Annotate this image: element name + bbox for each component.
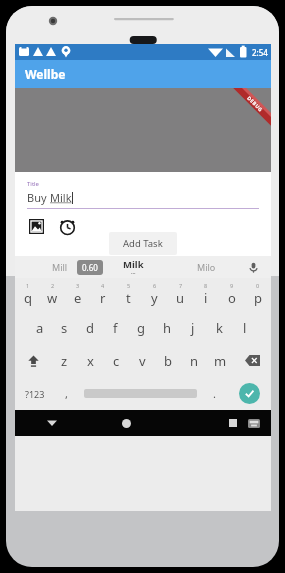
staticText: z [61,352,68,370]
button[interactable]: 9 [219,278,245,311]
staticText: x [87,352,94,370]
button[interactable]: 8 [193,278,219,311]
button[interactable]: a [27,311,52,344]
staticText: 9 [230,282,234,289]
button[interactable]: Back [15,410,89,436]
button[interactable]: 3 [65,278,90,311]
staticText: v [139,352,146,370]
staticText: c [113,352,120,370]
staticText: Add Task [123,237,163,250]
button[interactable]: v [129,344,155,377]
button[interactable]: Voice input [243,256,263,278]
button[interactable]: 0 [245,278,271,311]
staticText: 2:54 [252,47,268,58]
button[interactable]: h [154,311,180,344]
staticText: k [216,319,223,337]
button[interactable]: Wellbe [15,60,271,88]
button[interactable]: Milo [170,256,243,278]
button[interactable]: Home [89,410,163,436]
button[interactable]: Switch keyboard [237,410,271,436]
staticText: Milk [50,190,72,205]
staticText: n [190,352,199,370]
staticText: l [243,319,247,337]
staticText: . [213,386,216,401]
staticText: 3 [76,282,80,289]
staticText: u [176,289,185,307]
staticText: r [100,289,106,307]
button[interactable]: 6 [141,278,167,311]
staticText: 6 [153,282,157,289]
button[interactable]: Add image [27,217,45,235]
button[interactable]: 4 [90,278,115,311]
staticText: Milo [197,261,216,273]
staticText: y [151,289,158,307]
button[interactable]: z [52,344,77,377]
button[interactable]: Add Task [109,232,177,255]
staticText: s [61,319,68,337]
staticText: 5 [127,282,131,289]
button[interactable]: ?123 [15,377,54,410]
staticText: 0.60 [82,262,98,273]
staticText: i [204,289,208,307]
button[interactable]: x [77,344,103,377]
button[interactable]: Done [227,377,271,410]
staticText: q [24,289,32,307]
button[interactable]: , [54,377,79,410]
button[interactable]: c [103,344,129,377]
staticText: b [164,352,172,370]
button[interactable]: 5 [115,278,141,311]
button[interactable]: k [206,311,232,344]
button[interactable]: Backspace [233,344,271,377]
button[interactable]: l [232,311,258,344]
button[interactable]: 2 [40,278,65,311]
staticText: h [163,319,172,337]
button[interactable]: d [77,311,102,344]
staticText: f [113,319,118,337]
button[interactable]: s [52,311,77,344]
staticText: DEBUG [245,95,265,114]
button[interactable]: f [102,311,128,344]
staticText: ?123 [25,388,45,400]
button[interactable]: . [202,377,227,410]
staticText: Mill [52,261,68,273]
staticText: , [65,386,68,401]
staticText: 2 [51,282,55,289]
button[interactable]: 7 [167,278,193,311]
staticText: 1 [26,282,30,289]
staticText: d [86,319,94,337]
button[interactable]: Recents [163,410,237,436]
staticText: Title [27,180,39,188]
staticText: j [191,319,195,337]
staticText: t [126,289,131,307]
staticText: g [137,319,145,337]
staticText: w [47,289,58,307]
staticText: 4 [101,282,105,289]
button[interactable]: j [180,311,206,344]
button[interactable]: Mill [23,256,97,278]
staticText: ••• [131,271,136,276]
staticText: Wellbe [25,66,66,82]
button[interactable]: b [155,344,181,377]
button[interactable]: Shift [15,344,52,377]
staticText: m [214,352,227,370]
button[interactable]: m [207,344,233,377]
staticText: Buy [27,190,50,205]
button[interactable]: g [128,311,154,344]
staticText: o [228,289,236,307]
staticText: 7 [179,282,183,289]
button[interactable]: Space [79,377,202,410]
staticText: p [254,289,262,307]
staticText: e [74,289,82,307]
staticText: 0 [256,282,260,289]
staticText: a [36,319,44,337]
staticText: Milk [123,258,144,271]
button[interactable]: Set reminder [57,216,77,236]
button[interactable]: 1 [15,278,40,311]
button[interactable]: Milk [97,256,170,278]
button[interactable]: n [181,344,207,377]
staticText: 8 [204,282,208,289]
